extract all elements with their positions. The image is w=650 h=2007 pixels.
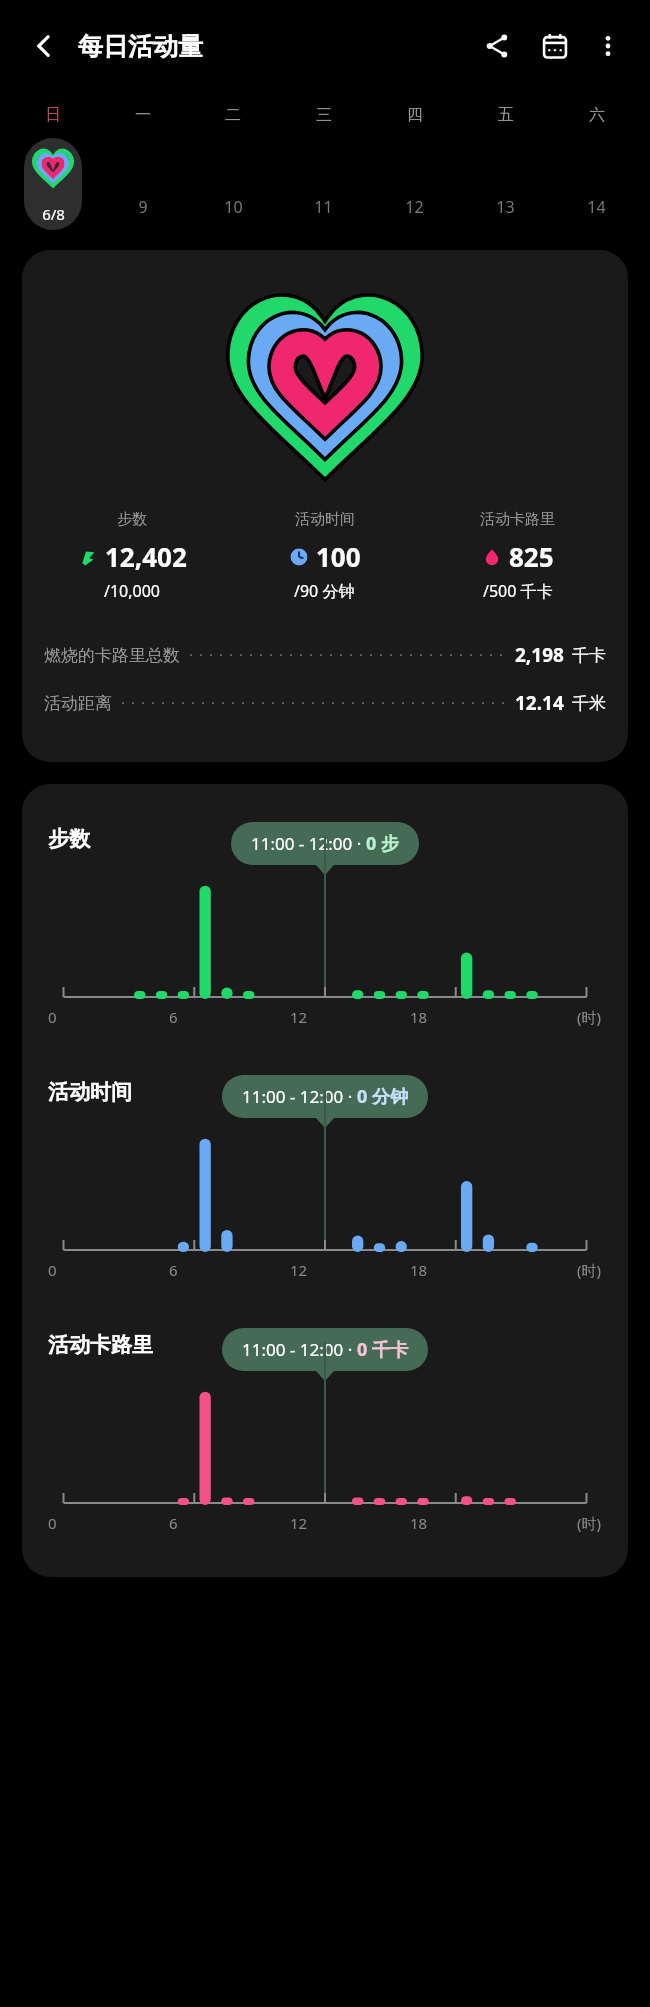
staticText: 活动时间 <box>48 1079 132 1105</box>
staticText: 日 <box>45 105 61 125</box>
staticText: 每日活动量 <box>78 31 203 62</box>
staticText: 12 <box>290 1007 308 1027</box>
staticText: 活动卡路里 <box>48 1332 153 1358</box>
button[interactable]: 10 <box>188 138 278 234</box>
staticText: 6 <box>169 1513 178 1533</box>
staticText: 六 <box>589 105 605 125</box>
staticText: 11 <box>314 196 333 218</box>
staticText: 10 <box>224 196 243 218</box>
staticText: 千卡 <box>572 645 606 666</box>
staticText: 2,198 <box>515 642 564 668</box>
button[interactable]: 步数 <box>22 806 628 1041</box>
button[interactable]: 6/8 <box>8 138 98 234</box>
button[interactable]: 活动卡路里 <box>22 1312 628 1547</box>
button[interactable]: More options <box>588 26 628 66</box>
staticText: 0 千卡 <box>357 1337 408 1362</box>
staticText: 0 <box>48 1007 57 1027</box>
button[interactable]: Share <box>474 23 520 69</box>
staticText: 步数 <box>117 510 147 529</box>
button[interactable]: 步数 <box>22 250 628 762</box>
staticText: 100 <box>316 539 361 574</box>
staticText: 活动距离 <box>44 693 112 714</box>
staticText: 0 <box>48 1260 57 1280</box>
staticText: 燃烧的卡路里总数 <box>44 645 180 666</box>
button[interactable]: 活动距离 <box>44 690 606 716</box>
staticText: 6 <box>169 1260 178 1280</box>
staticText: 825 <box>509 539 554 574</box>
staticText: 二 <box>225 105 241 125</box>
staticText: 活动卡路里 <box>480 510 555 529</box>
staticText: 0 步 <box>366 831 399 856</box>
staticText: 6/8 <box>42 204 65 224</box>
staticText: 18 <box>410 1260 428 1280</box>
button[interactable]: 12 <box>369 138 460 234</box>
staticText: 步数 <box>48 826 90 852</box>
staticText: 12 <box>290 1513 308 1533</box>
staticText: 一 <box>135 105 151 125</box>
staticText: 18 <box>410 1007 428 1027</box>
button[interactable]: 活动时间 <box>22 1059 628 1294</box>
staticText: 14 <box>587 196 606 218</box>
staticText: 0 分钟 <box>357 1084 408 1109</box>
staticText: 五 <box>498 105 514 125</box>
button[interactable]: Calendar <box>532 23 578 69</box>
staticText: 0 <box>48 1513 57 1533</box>
staticText: 9 <box>138 196 148 218</box>
staticText: 12 <box>405 196 424 218</box>
staticText: /10,000 <box>104 580 161 602</box>
staticText: 11:00 - 12:00 · <box>242 1085 357 1108</box>
staticText: (时) <box>577 1260 602 1280</box>
staticText: 千米 <box>572 693 606 714</box>
staticText: 三 <box>316 105 332 125</box>
staticText: 13 <box>496 196 515 218</box>
staticText: (时) <box>577 1513 602 1533</box>
button[interactable]: 9 <box>98 138 188 234</box>
button[interactable]: 活动卡路里 <box>421 510 614 602</box>
staticText: 12,402 <box>105 539 187 574</box>
button[interactable]: 13 <box>460 138 551 234</box>
button[interactable]: 燃烧的卡路里总数 <box>44 642 606 668</box>
staticText: 活动时间 <box>295 510 355 529</box>
staticText: 11:00 - 12:00 · <box>251 832 366 855</box>
staticText: 12.14 <box>515 690 564 716</box>
staticText: 6 <box>169 1007 178 1027</box>
button[interactable]: 11 <box>278 138 369 234</box>
staticText: 11:00 - 12:00 · <box>242 1338 357 1361</box>
button[interactable]: 活动时间 <box>228 510 421 602</box>
staticText: 12 <box>290 1260 308 1280</box>
staticText: 四 <box>407 105 423 125</box>
button[interactable]: Back <box>22 24 66 68</box>
staticText: /90 分钟 <box>294 580 355 602</box>
staticText: /500 千卡 <box>483 580 553 602</box>
staticText: (时) <box>577 1007 602 1027</box>
staticText: 18 <box>410 1513 428 1533</box>
button[interactable]: 步数 <box>36 510 228 602</box>
button[interactable]: 14 <box>551 138 642 234</box>
